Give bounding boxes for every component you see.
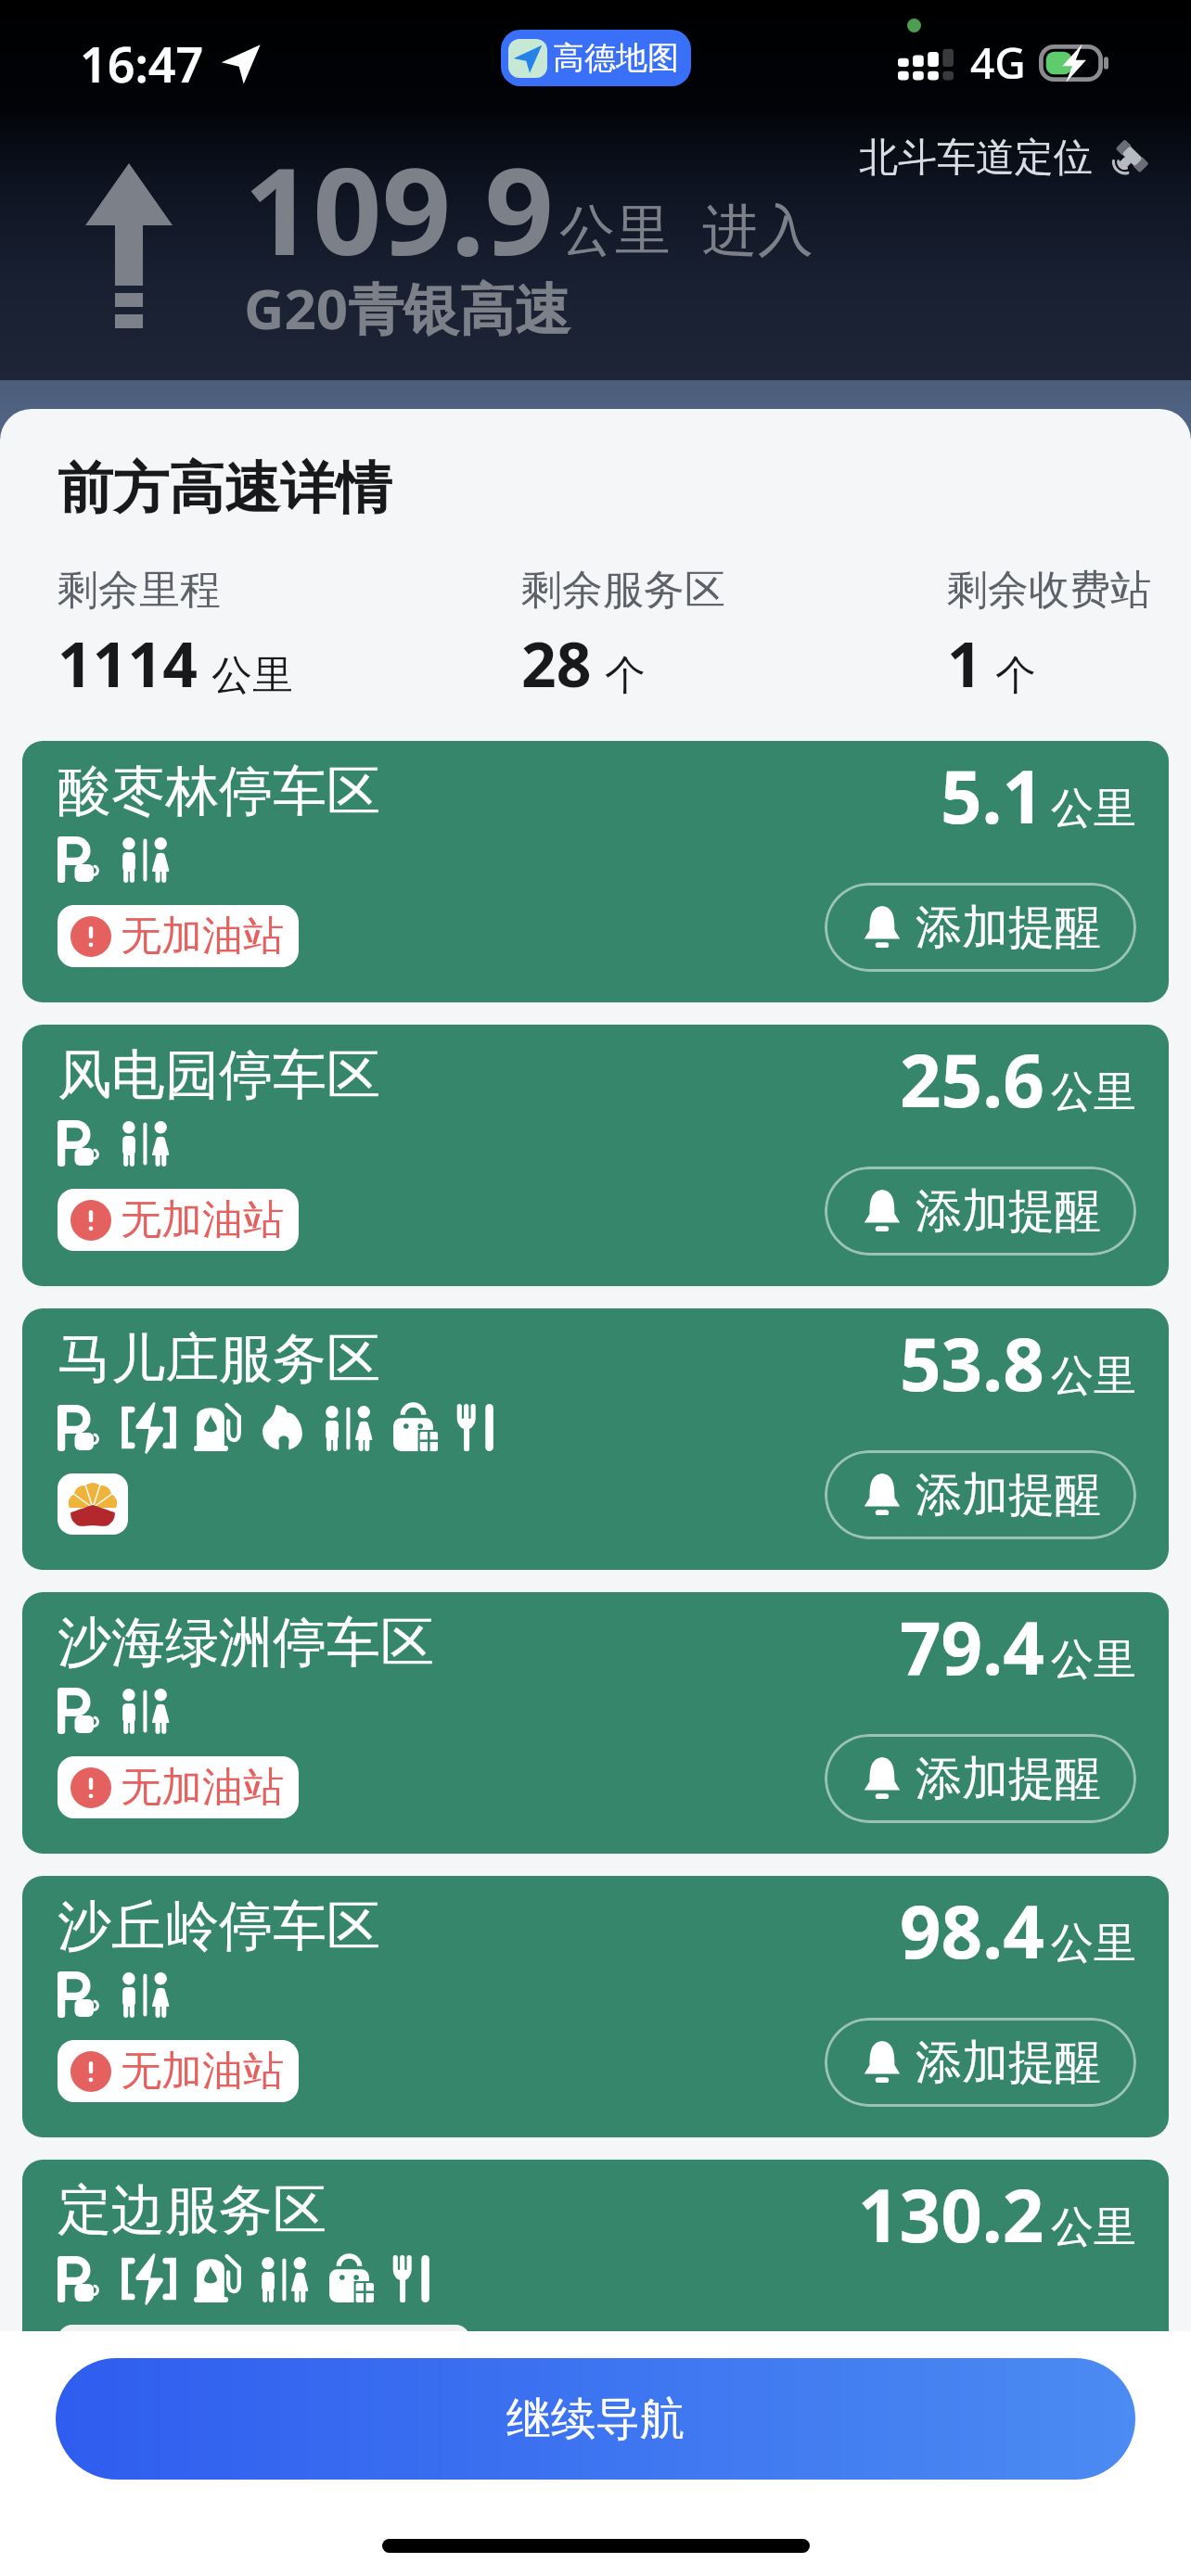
- button[interactable]: 高德地图: [501, 30, 691, 86]
- staticText: 公里: [1051, 782, 1136, 835]
- staticText: 定边服务区: [58, 2176, 327, 2244]
- staticText: 53.8: [900, 1314, 1044, 1412]
- staticText: 剩余收费站: [947, 565, 1151, 616]
- staticText: 进入: [702, 196, 813, 266]
- staticText: 公里: [1051, 1633, 1136, 1687]
- staticText: 无加油站: [121, 1194, 284, 1245]
- staticText: 添加提醒: [916, 1182, 1101, 1241]
- staticText: 98.4: [900, 1881, 1044, 1980]
- staticText: 公里: [211, 650, 293, 701]
- staticText: 79.4: [900, 1598, 1044, 1696]
- staticText: 酸枣林停车区: [58, 758, 380, 825]
- staticText: 剩余里程: [58, 565, 221, 616]
- button[interactable]: 沙海绿洲停车区: [22, 1592, 1169, 1854]
- button[interactable]: 定边服务区: [22, 2160, 1169, 2421]
- staticText: 公里: [1051, 2200, 1136, 2254]
- staticText: 北斗车道定位: [859, 134, 1093, 183]
- staticText: 剩余服务区: [521, 565, 725, 616]
- staticText: 个: [995, 650, 1036, 701]
- staticText: 公里: [1051, 1917, 1136, 1970]
- staticText: 前方高速详情: [58, 453, 391, 524]
- staticText: 25.6: [900, 1030, 1044, 1129]
- staticText: 沙丘岭停车区: [58, 1893, 380, 1960]
- staticText: G20青银高速: [244, 270, 571, 346]
- staticText: 继续导航: [506, 2391, 685, 2447]
- staticText: 添加提醒: [916, 1466, 1101, 1524]
- staticText: 无加油站: [121, 1762, 284, 1813]
- button[interactable]: 添加提醒: [825, 2018, 1136, 2107]
- button[interactable]: 添加提醒: [825, 1167, 1136, 1256]
- staticText: 风电园停车区: [58, 1041, 380, 1109]
- button[interactable]: 酸枣林停车区: [22, 741, 1169, 1002]
- staticText: 109.9: [244, 126, 554, 290]
- button[interactable]: 北斗车道定位: [859, 117, 1191, 183]
- staticText: 个: [605, 650, 646, 701]
- button[interactable]: 沙丘岭停车区: [22, 1876, 1169, 2137]
- button[interactable]: 添加提醒: [825, 883, 1136, 972]
- staticText: 无加油站: [121, 911, 284, 962]
- staticText: 无加油站: [121, 2046, 284, 2097]
- button[interactable]: 继续导航: [56, 2358, 1135, 2480]
- staticText: 添加提醒: [916, 2034, 1101, 2092]
- staticText: 添加提醒: [916, 899, 1101, 957]
- staticText: 16:47: [80, 31, 204, 96]
- staticText: 添加提醒: [916, 1750, 1101, 1808]
- staticText: 公里: [1051, 1065, 1136, 1119]
- button[interactable]: 马儿庄服务区: [22, 1308, 1169, 1570]
- staticText: 4G: [970, 33, 1026, 92]
- staticText: 130.2: [858, 2165, 1044, 2264]
- staticText: 沙海绿洲停车区: [58, 1609, 434, 1677]
- staticText: 公里: [559, 196, 671, 266]
- staticText: 5.1: [941, 746, 1044, 845]
- button[interactable]: 添加提醒: [825, 1734, 1136, 1823]
- staticText: 1114: [58, 621, 198, 705]
- staticText: 28: [521, 621, 592, 705]
- staticText: 高德地图: [553, 38, 679, 78]
- button[interactable]: 风电园停车区: [22, 1025, 1169, 1286]
- staticText: 公里: [1051, 1349, 1136, 1403]
- staticText: 1: [947, 621, 982, 705]
- staticText: 马儿庄服务区: [58, 1325, 380, 1393]
- button[interactable]: 添加提醒: [825, 1450, 1136, 1539]
